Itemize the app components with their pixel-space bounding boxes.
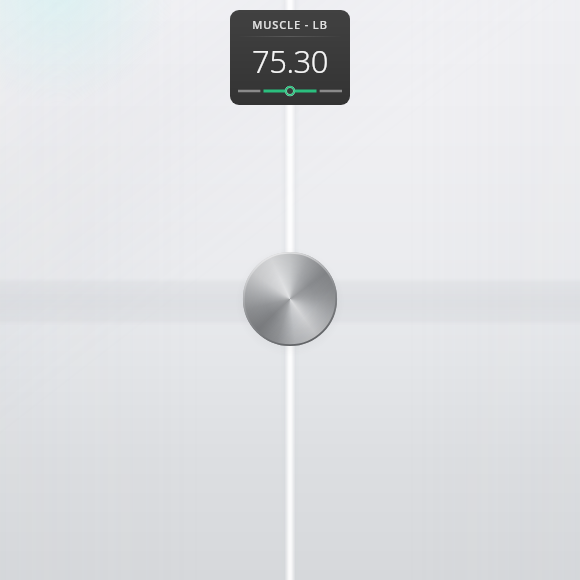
button[interactable]: Scale dial [243, 252, 337, 346]
button[interactable]: Muscle level slider [238, 84, 342, 98]
button[interactable]: MUSCLE - LB [230, 10, 350, 105]
staticText: MUSCLE - LB [252, 17, 328, 32]
staticText: 75.30 [252, 40, 328, 82]
